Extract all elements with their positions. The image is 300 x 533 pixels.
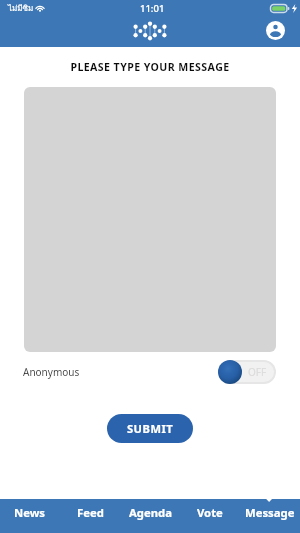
staticText: SUBMIT [127, 421, 174, 436]
button[interactable]: News [0, 499, 60, 533]
button[interactable]: Feed [60, 499, 120, 533]
staticText: Agenda [129, 505, 172, 520]
staticText: Vote [197, 505, 223, 520]
staticText: Message [245, 505, 295, 520]
staticText: Feed [77, 505, 104, 520]
button[interactable]: Profile [266, 21, 285, 40]
button[interactable]: Message [240, 499, 300, 533]
staticText: ไม่มีซิม [8, 2, 34, 15]
staticText: News [14, 505, 46, 520]
staticText: Anonymous [23, 365, 80, 379]
button[interactable]: SUBMIT [107, 414, 193, 443]
button[interactable]: Agenda [120, 499, 180, 533]
button[interactable]: Anonymous toggle [218, 360, 276, 384]
staticText: OFF [248, 365, 267, 379]
staticText: PLEASE TYPE YOUR MESSAGE [70, 60, 230, 74]
staticText: 11:01 [140, 2, 165, 15]
button[interactable]: Vote [180, 499, 240, 533]
